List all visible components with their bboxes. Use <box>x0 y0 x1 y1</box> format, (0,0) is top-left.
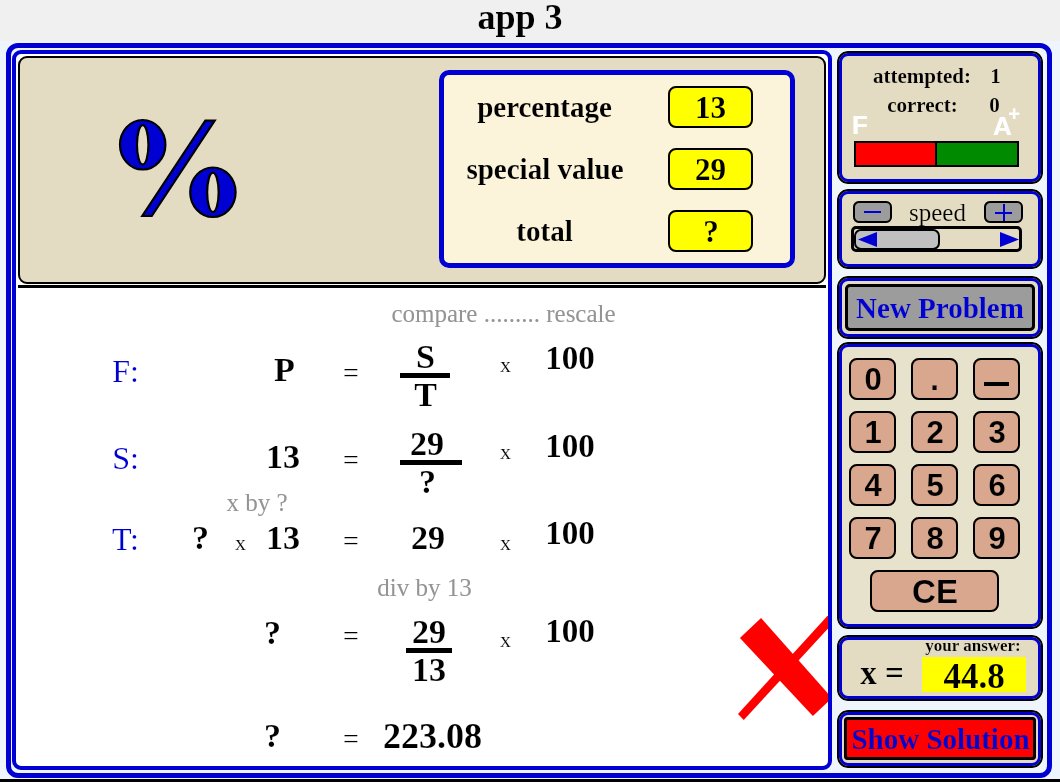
button[interactable]: 9 <box>973 517 1020 559</box>
staticText: = <box>343 525 359 556</box>
staticText: A <box>993 111 1012 140</box>
button[interactable]: 4 <box>849 464 896 506</box>
staticText: 5 <box>926 468 944 503</box>
staticText: 44.8 <box>943 657 1005 692</box>
button[interactable]: CE <box>870 570 999 612</box>
staticText: ? <box>192 519 209 557</box>
staticText: 4 <box>864 468 882 503</box>
button[interactable]: 0 <box>849 358 896 400</box>
staticText: 29 <box>412 613 446 651</box>
staticText: special value <box>466 153 624 185</box>
button[interactable]: Increase speed <box>984 201 1023 223</box>
staticText: app 3 <box>477 0 563 37</box>
staticText: 100 <box>545 613 595 650</box>
staticText: 13 <box>412 651 446 689</box>
button[interactable]: Minus <box>973 358 1020 400</box>
staticText: 3 <box>988 415 1006 450</box>
staticText: x = <box>860 655 904 692</box>
button[interactable]: Decrease speed <box>853 201 892 223</box>
staticText: S <box>416 338 435 376</box>
staticText: 0 <box>864 362 882 397</box>
staticText: F <box>852 110 868 139</box>
button[interactable]: 8 <box>911 517 958 559</box>
staticText: . <box>930 362 939 397</box>
button[interactable]: New Problem <box>845 284 1035 331</box>
staticText: 100 <box>545 340 595 377</box>
staticText: x <box>500 352 511 376</box>
staticText: 8 <box>926 521 944 556</box>
button[interactable]: 29 <box>668 148 753 190</box>
staticText: x by ? <box>226 489 288 517</box>
button[interactable]: 5 <box>911 464 958 506</box>
staticText: 29 <box>695 152 726 186</box>
button[interactable]: 13 <box>668 86 753 128</box>
staticText: 13 <box>266 438 300 476</box>
staticText: compare ......... rescale <box>391 300 616 328</box>
staticText: 1 <box>864 415 882 450</box>
staticText: 6 <box>988 468 1006 503</box>
staticText: = <box>343 357 359 388</box>
staticText: 13 <box>266 519 300 557</box>
other: Incorrect <box>738 614 828 720</box>
staticText: correct: <box>887 93 958 116</box>
button[interactable]: ? <box>668 210 753 252</box>
staticText: = <box>343 723 359 754</box>
button[interactable]: . <box>911 358 958 400</box>
staticText: ? <box>419 463 436 501</box>
staticText: x <box>500 627 511 651</box>
staticText: New Problem <box>856 292 1024 324</box>
staticText: = <box>343 444 359 475</box>
button[interactable]: 7 <box>849 517 896 559</box>
staticText: 9 <box>988 521 1006 556</box>
staticText: T <box>414 376 437 414</box>
staticText: 29 <box>411 519 445 557</box>
staticText: Show Solution <box>851 723 1030 755</box>
staticText: 2 <box>926 415 944 450</box>
button[interactable]: Speed slider <box>851 226 1022 252</box>
staticText: x <box>500 439 511 463</box>
staticText: attempted: <box>873 64 971 87</box>
staticText: 13 <box>695 90 726 124</box>
staticText: x <box>500 530 511 554</box>
staticText: F: <box>112 353 139 388</box>
staticText: percentage <box>477 91 612 123</box>
staticText: 100 <box>545 515 595 552</box>
staticText: 29 <box>410 425 444 463</box>
staticText: your answer: <box>925 636 1021 655</box>
staticText: x <box>235 530 246 554</box>
staticText: P <box>274 351 295 389</box>
staticText: T: <box>112 521 139 556</box>
staticText: + <box>1008 103 1020 125</box>
staticText: 7 <box>864 521 882 556</box>
staticText: 100 <box>545 428 595 465</box>
staticText: = <box>343 620 359 651</box>
staticText: 223.08 <box>383 716 482 756</box>
staticText: 1 <box>990 64 1001 87</box>
staticText: S: <box>112 440 139 475</box>
staticText: div by 13 <box>377 574 472 602</box>
staticText: ? <box>264 717 281 755</box>
button[interactable]: Show Solution <box>844 717 1036 760</box>
staticText: 0 <box>989 93 1000 116</box>
staticText: speed <box>909 199 966 227</box>
button[interactable]: 3 <box>973 411 1020 453</box>
staticText: ? <box>264 614 281 652</box>
button[interactable]: 1 <box>849 411 896 453</box>
staticText: total <box>516 215 573 247</box>
staticText: ? <box>703 214 719 248</box>
button[interactable]: 2 <box>911 411 958 453</box>
button[interactable]: 6 <box>973 464 1020 506</box>
staticText: CE <box>912 573 958 610</box>
